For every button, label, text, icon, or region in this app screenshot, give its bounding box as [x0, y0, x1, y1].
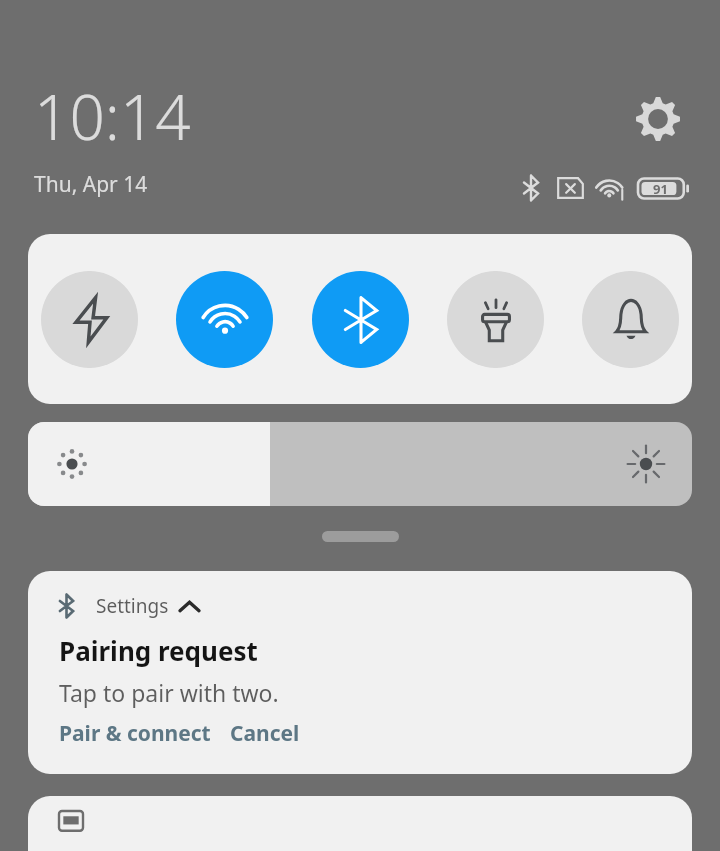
- button[interactable]: Cancel: [230, 719, 300, 748]
- staticText: Pair & connect: [59, 719, 211, 748]
- button[interactable]: [28, 422, 692, 506]
- button[interactable]: Wi-Fi: [176, 271, 273, 368]
- button[interactable]: Settings: [28, 571, 692, 774]
- staticText: 10:14: [34, 74, 191, 158]
- staticText: Cancel: [230, 719, 300, 748]
- button[interactable]: Bluetooth: [312, 271, 409, 368]
- staticText: Pairing request: [59, 633, 258, 668]
- staticText: Thu, Apr 14: [34, 170, 148, 199]
- button[interactable]: Do not disturb: [582, 271, 679, 368]
- button[interactable]: Pair & connect: [59, 719, 211, 748]
- button[interactable]: Flashlight: [447, 271, 544, 368]
- button[interactable]: [28, 796, 692, 851]
- staticText: Tap to pair with two.: [59, 677, 279, 708]
- button[interactable]: Settings: [634, 95, 682, 143]
- button[interactable]: Battery saver: [41, 271, 138, 368]
- staticText: 91: [653, 180, 668, 198]
- button[interactable]: Expand: [322, 531, 399, 542]
- staticText: Settings: [96, 593, 169, 619]
